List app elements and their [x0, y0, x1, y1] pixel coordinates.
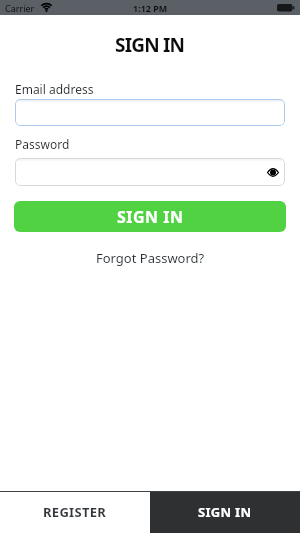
staticText: Email address: [15, 81, 94, 97]
staticText: Forgot Password?: [96, 249, 205, 267]
button[interactable]: [15, 99, 285, 126]
button[interactable]: Forgot Password?: [0, 248, 300, 268]
button[interactable]: REGISTER: [0, 491, 150, 533]
staticText: SIGN IN: [198, 503, 252, 521]
button[interactable]: SIGN IN: [150, 491, 300, 533]
staticText: Password: [15, 136, 70, 152]
button[interactable]: [15, 158, 285, 186]
staticText: 1:12 PM: [133, 2, 168, 14]
staticText: SIGN IN: [115, 32, 185, 54]
staticText: Carrier: [5, 2, 35, 14]
staticText: REGISTER: [43, 503, 107, 521]
button[interactable]: SIGN IN: [14, 201, 286, 232]
staticText: SIGN IN: [117, 206, 184, 228]
